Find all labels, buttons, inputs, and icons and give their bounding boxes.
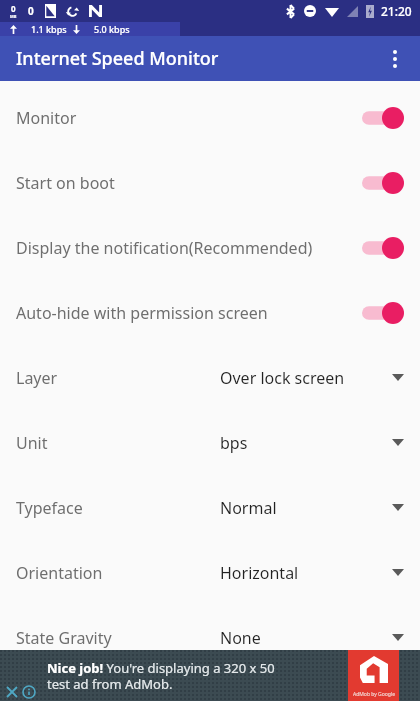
staticText: 21:20 bbox=[381, 3, 412, 19]
staticText: Typeface bbox=[16, 497, 220, 519]
button[interactable]: Ad information bbox=[20, 683, 37, 700]
button[interactable]: More options bbox=[374, 38, 416, 80]
button[interactable]: Layer bbox=[0, 345, 420, 410]
button[interactable]: Display the notification(Recommended) bbox=[0, 215, 420, 280]
button[interactable]: AdMob ad bbox=[348, 650, 399, 701]
button[interactable]: Close ad bbox=[3, 683, 20, 700]
staticText: Over lock screen bbox=[220, 367, 392, 389]
staticText: Horizontal bbox=[220, 562, 392, 584]
staticText: Monitor bbox=[16, 107, 362, 129]
button[interactable]: Auto-hide with permission screen bbox=[0, 280, 420, 345]
staticText: Auto-hide with permission screen bbox=[16, 302, 362, 324]
staticText: Nice job! You're displaying a 320 x 50 t… bbox=[47, 659, 299, 692]
staticText: Layer bbox=[16, 367, 220, 389]
staticText: 1.1 kbps bbox=[31, 23, 67, 35]
button[interactable]: Unit bbox=[0, 410, 420, 475]
staticText: 5.0 kbps bbox=[94, 23, 130, 35]
button[interactable]: Orientation bbox=[0, 540, 420, 605]
staticText: State Gravity bbox=[16, 627, 220, 649]
staticText: Unit bbox=[16, 432, 220, 454]
staticText: Normal bbox=[220, 497, 392, 519]
staticText: MB bbox=[10, 14, 17, 19]
staticText: Display the notification(Recommended) bbox=[16, 237, 362, 259]
staticText: bps bbox=[220, 432, 392, 454]
staticText: Orientation bbox=[16, 562, 220, 584]
staticText: Start on boot bbox=[16, 172, 362, 194]
staticText: Internet Speed Monitor bbox=[16, 46, 219, 71]
button[interactable]: State Gravity bbox=[0, 605, 420, 670]
button[interactable]: Start on boot bbox=[0, 150, 420, 215]
staticText: AdMob by Google bbox=[353, 691, 395, 698]
button[interactable]: Monitor bbox=[0, 85, 420, 150]
staticText: 0 bbox=[28, 4, 34, 18]
staticText: None bbox=[220, 627, 392, 649]
button[interactable]: Typeface bbox=[0, 475, 420, 540]
staticText: 0 bbox=[11, 3, 16, 14]
